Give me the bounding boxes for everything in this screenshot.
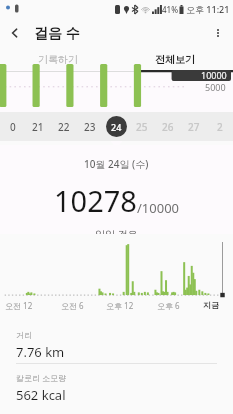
staticText: 7.76 km <box>16 343 65 361</box>
button[interactable]: 25 <box>129 112 155 141</box>
staticText: 22 <box>58 120 70 134</box>
staticText: 25 <box>136 120 148 134</box>
staticText: 오후 12 <box>106 300 134 311</box>
staticText: 27 <box>188 120 200 134</box>
button[interactable]: 26 <box>155 112 181 141</box>
staticText: 10278 <box>54 181 137 220</box>
button[interactable]: 27 <box>181 112 207 141</box>
staticText: 칼로리 소모량 <box>16 372 67 383</box>
staticText: 5000 <box>205 81 226 93</box>
button[interactable]: 거리 <box>0 322 233 363</box>
staticText: 41% <box>162 4 178 15</box>
button[interactable]: 2 <box>207 112 233 141</box>
staticText: 거리 <box>16 330 32 340</box>
staticText: 26 <box>162 120 174 134</box>
button[interactable]: 23 <box>77 112 103 141</box>
button[interactable]: 기록하기 <box>0 48 116 70</box>
staticText: 0 <box>10 120 16 134</box>
button[interactable]: Back <box>0 18 30 48</box>
staticText: 오전 12 <box>5 300 33 311</box>
staticText: 기록하기 <box>38 53 78 66</box>
staticText: 21 <box>32 120 44 134</box>
staticText: 2 <box>217 120 223 134</box>
staticText: 지금 <box>203 300 219 310</box>
button[interactable]: More options <box>203 18 233 48</box>
staticText: 오후 11:21 <box>186 3 230 15</box>
staticText: 오후 6 <box>157 300 180 311</box>
button[interactable]: 22 <box>51 112 77 141</box>
staticText: 562 kcal <box>16 386 66 404</box>
button[interactable]: 칼로리 소모량 <box>0 364 233 405</box>
button[interactable]: 전체보기 <box>116 48 233 70</box>
staticText: 23 <box>84 120 96 134</box>
staticText: 10월 24일 (수) <box>84 157 149 171</box>
staticText: 걸음 수 <box>34 23 80 42</box>
staticText: 일일 걸음 <box>95 227 138 234</box>
staticText: 전체보기 <box>155 53 195 66</box>
button[interactable]: 0 <box>0 112 25 141</box>
staticText: 10000 <box>201 69 227 81</box>
button[interactable]: 21 <box>25 112 51 141</box>
button[interactable]: 24 <box>103 112 129 141</box>
staticText: /10000 <box>137 199 180 217</box>
staticText: 오전 6 <box>61 300 84 311</box>
staticText: 24 <box>111 121 122 133</box>
